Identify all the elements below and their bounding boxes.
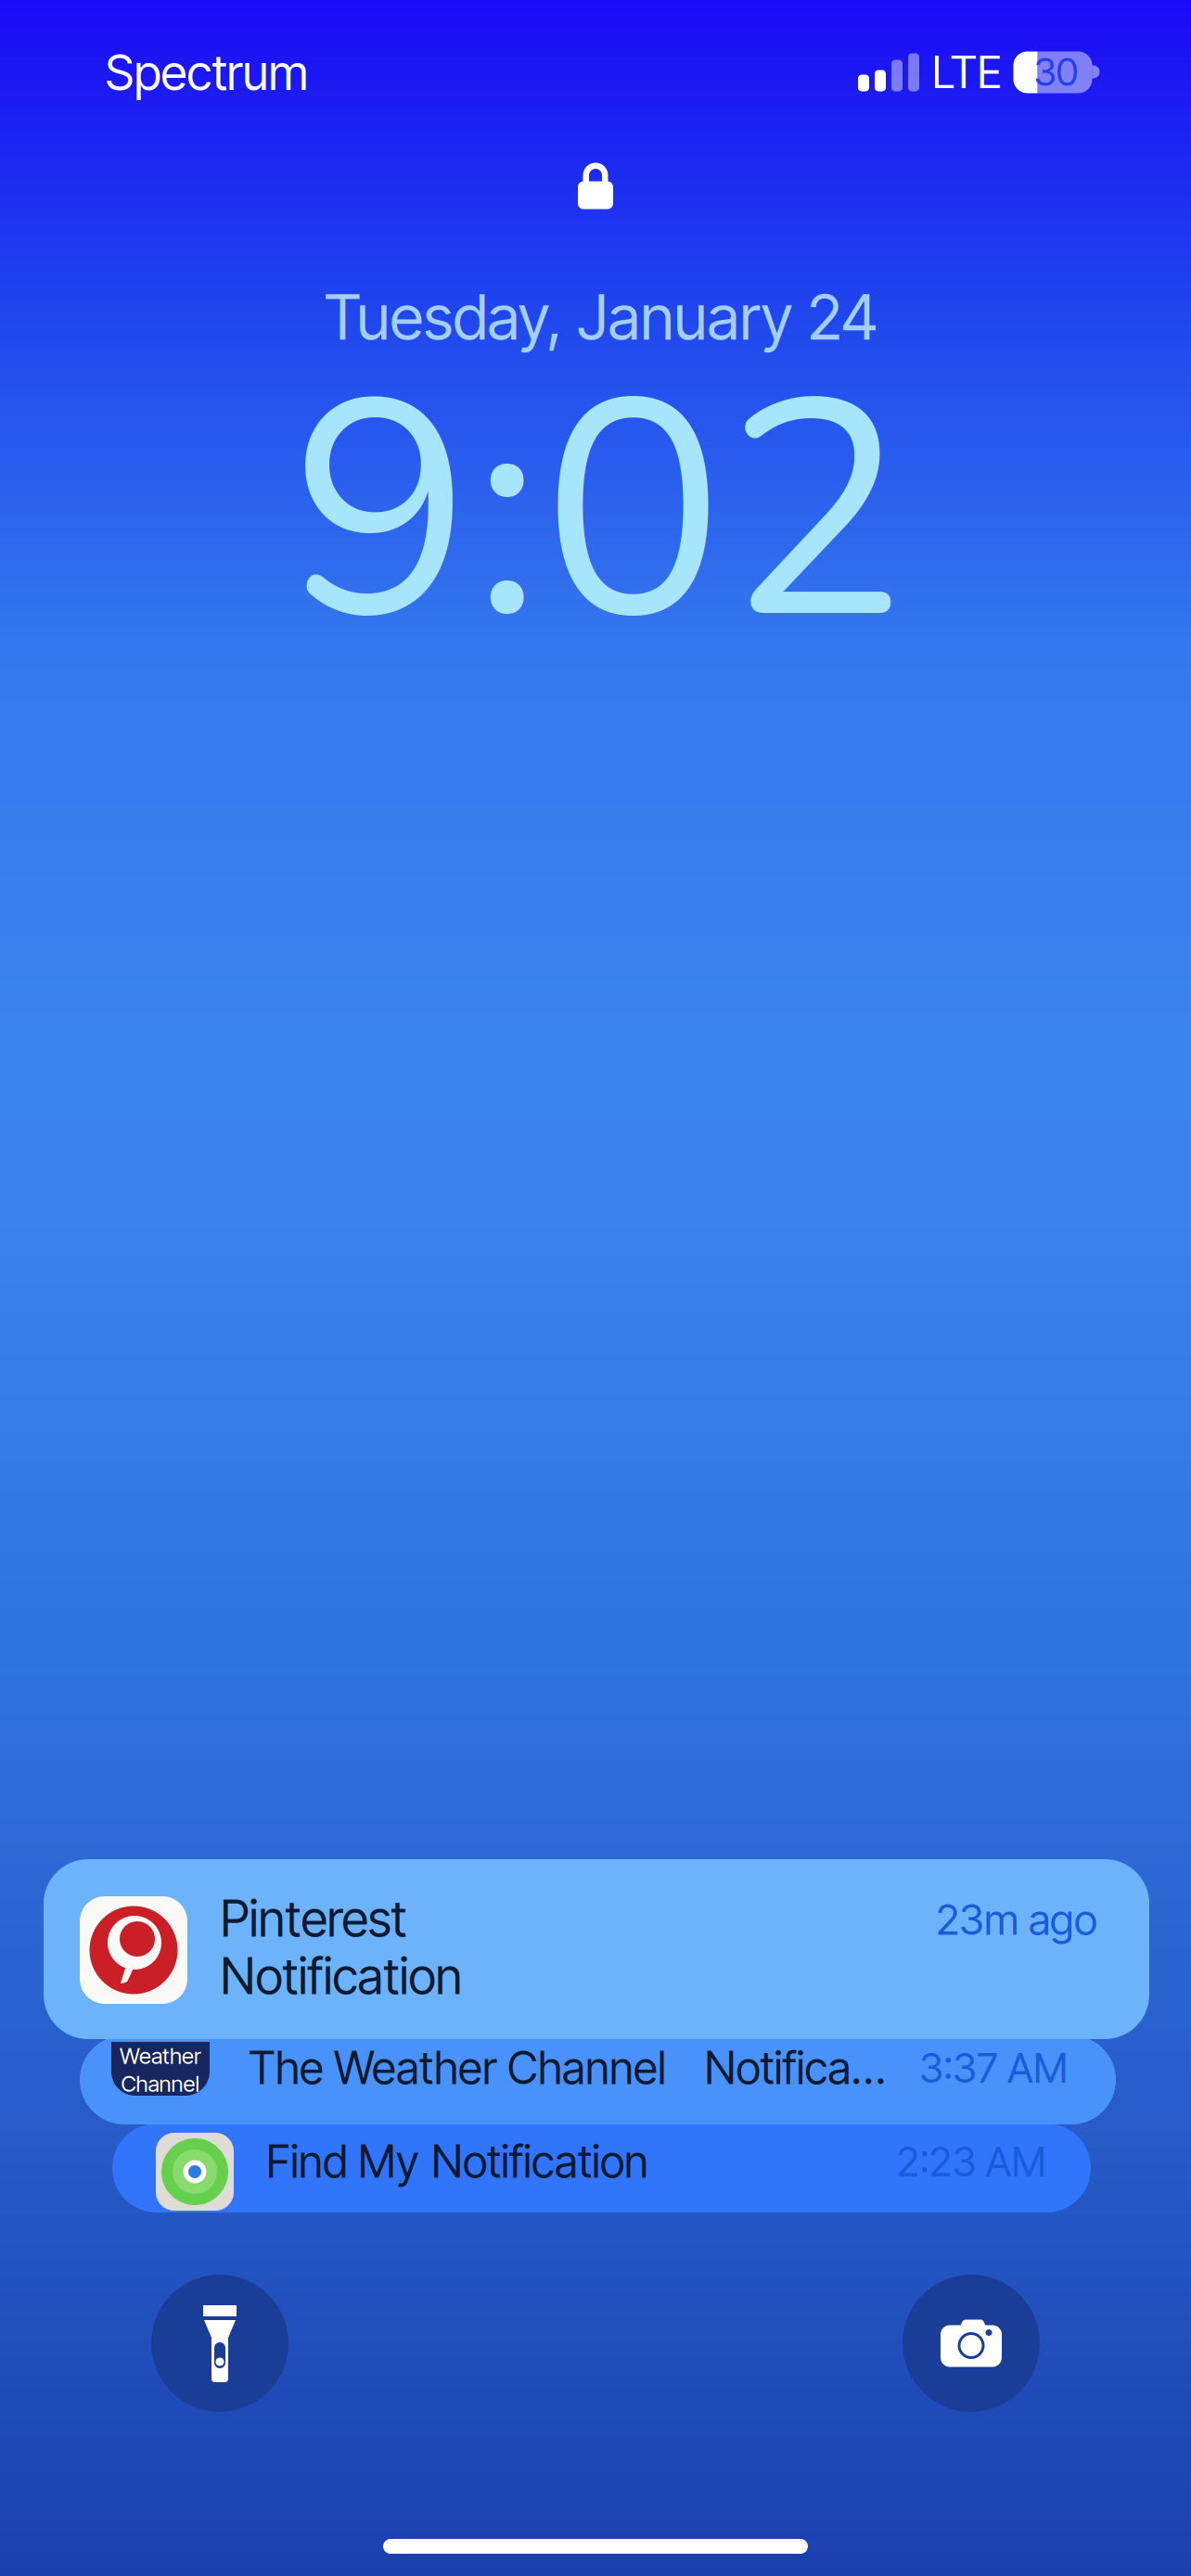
button[interactable]: Flashlight <box>151 2275 288 2412</box>
staticText: Find My <box>266 2135 418 2188</box>
staticText: 3:37 AM <box>919 2043 1068 2093</box>
staticText: LTE <box>932 45 1001 99</box>
staticText: Notifica… <box>704 2041 885 2095</box>
staticText: Notification <box>220 1946 462 2006</box>
staticText: Spectrum <box>105 43 308 101</box>
staticText: The Weather Channel <box>249 2041 666 2095</box>
staticText: Weather <box>120 2042 201 2069</box>
button[interactable]: Camera <box>903 2275 1040 2412</box>
staticText: Tuesday, January 24 <box>324 280 878 355</box>
staticText: Pinterest <box>220 1889 407 1948</box>
staticText: 23m ago <box>936 1894 1097 1945</box>
staticText: 2:23 AM <box>896 2137 1046 2186</box>
staticText: 30 <box>1034 49 1078 95</box>
staticText: 9:02 <box>289 305 907 720</box>
staticText: Notification <box>431 2135 648 2188</box>
staticText: Channel <box>121 2070 200 2097</box>
